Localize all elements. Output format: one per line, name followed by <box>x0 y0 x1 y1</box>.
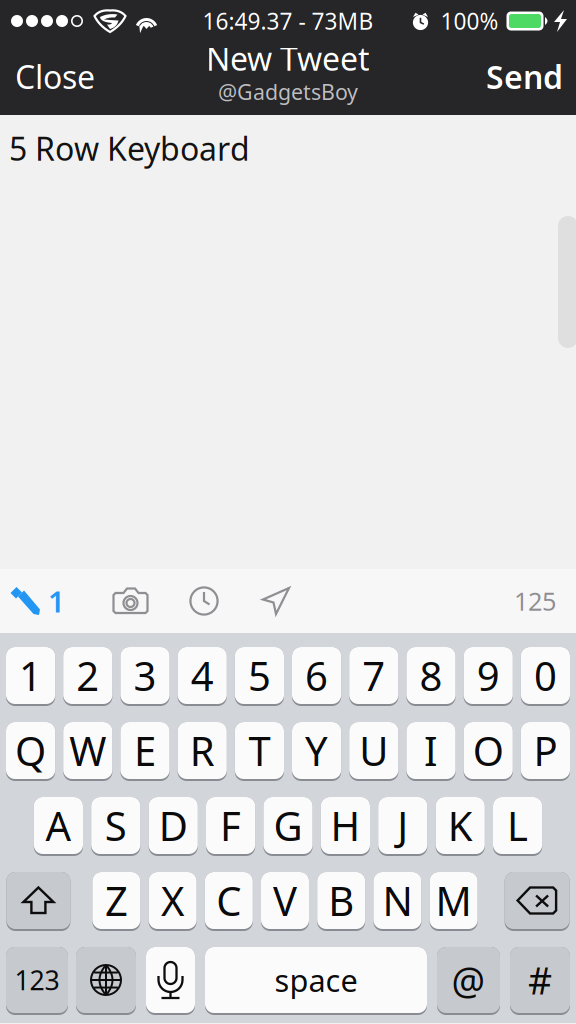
staticText: 125 <box>514 584 556 618</box>
button[interactable]: C <box>205 872 253 931</box>
button[interactable]: Delete <box>505 872 570 931</box>
button[interactable]: Dictate <box>146 947 195 1015</box>
staticText: M <box>436 874 472 927</box>
button[interactable]: O <box>464 722 513 781</box>
staticText: X <box>161 874 184 927</box>
button[interactable]: Location <box>240 569 312 633</box>
staticText: G <box>273 799 302 852</box>
button[interactable]: V <box>261 872 309 931</box>
button[interactable]: Draft <box>0 569 76 633</box>
button[interactable]: Shift <box>6 872 70 931</box>
button[interactable]: J <box>378 797 427 856</box>
button[interactable]: U <box>349 722 398 781</box>
staticText: F <box>220 799 241 852</box>
button[interactable]: R <box>178 722 227 781</box>
staticText: 100% <box>440 6 498 36</box>
staticText: U <box>359 724 388 777</box>
button[interactable]: @ <box>437 947 500 1015</box>
button[interactable]: 4 <box>178 647 227 706</box>
button[interactable]: 3 <box>120 647 170 706</box>
staticText: V <box>273 874 297 927</box>
staticText: 4 <box>191 649 214 702</box>
button[interactable]: A <box>34 797 83 856</box>
button[interactable]: L <box>493 797 542 856</box>
button[interactable]: H <box>321 797 370 856</box>
staticText: E <box>134 724 156 777</box>
staticText: W <box>69 724 106 777</box>
staticText: D <box>159 799 188 852</box>
button[interactable]: space <box>205 947 427 1015</box>
staticText: @ <box>451 955 485 1005</box>
button[interactable]: 5 <box>235 647 284 706</box>
staticText: 8 <box>419 649 442 702</box>
button[interactable]: N <box>373 872 421 931</box>
button[interactable]: 8 <box>406 647 456 706</box>
staticText: New Tweet <box>206 37 370 80</box>
staticText: L <box>507 799 528 852</box>
staticText: 0 <box>534 649 557 702</box>
staticText: H <box>330 799 360 852</box>
staticText: 1 <box>19 649 42 702</box>
staticText: K <box>448 799 473 852</box>
staticText: O <box>473 724 504 777</box>
staticText: 16:49.37 - 73MB <box>202 6 373 36</box>
staticText: C <box>216 874 241 927</box>
staticText: T <box>248 724 270 777</box>
staticText: A <box>45 799 71 852</box>
button[interactable]: 1 <box>6 647 55 706</box>
button[interactable]: 7 <box>349 647 398 706</box>
button[interactable]: Next keyboard <box>76 947 136 1015</box>
button[interactable]: Schedule <box>168 569 240 633</box>
staticText: 9 <box>477 649 500 702</box>
staticText: 5 <box>248 649 271 702</box>
staticText: @GadgetsBoy <box>218 78 358 106</box>
staticText: 7 <box>362 649 385 702</box>
staticText: J <box>397 799 408 852</box>
staticText: S <box>105 799 127 852</box>
staticText: # <box>528 955 552 1005</box>
button[interactable]: Z <box>92 872 140 931</box>
button[interactable]: 0 <box>521 647 570 706</box>
staticText: 1 <box>48 581 65 620</box>
button[interactable]: 6 <box>292 647 341 706</box>
staticText: 5 Row Keyboard <box>9 127 250 169</box>
button[interactable]: E <box>120 722 170 781</box>
button[interactable]: M <box>430 872 478 931</box>
button[interactable]: D <box>149 797 198 856</box>
staticText: 2 <box>76 649 99 702</box>
staticText: Y <box>305 724 328 777</box>
button[interactable]: 9 <box>464 647 513 706</box>
button[interactable]: K <box>436 797 485 856</box>
staticText: Close <box>15 55 95 98</box>
button[interactable]: Send <box>453 42 576 115</box>
button[interactable]: P <box>521 722 570 781</box>
button[interactable]: 2 <box>63 647 112 706</box>
button[interactable]: S <box>91 797 140 856</box>
staticText: P <box>533 724 557 777</box>
staticText: I <box>424 724 438 777</box>
button[interactable]: Close <box>0 42 135 115</box>
staticText: Send <box>486 55 563 98</box>
staticText: space <box>274 960 357 1000</box>
button[interactable]: # <box>510 947 570 1015</box>
staticText: 3 <box>133 649 156 702</box>
staticText: 6 <box>305 649 328 702</box>
button[interactable]: G <box>263 797 313 856</box>
staticText: N <box>382 874 412 927</box>
button[interactable]: B <box>317 872 365 931</box>
button[interactable]: I <box>406 722 456 781</box>
button[interactable]: X <box>149 872 197 931</box>
staticText: B <box>328 874 354 927</box>
button[interactable]: W <box>63 722 112 781</box>
button[interactable]: Q <box>6 722 55 781</box>
staticText: Z <box>105 874 128 927</box>
button[interactable]: 123 <box>6 947 68 1015</box>
button[interactable]: T <box>235 722 284 781</box>
button[interactable]: Camera <box>76 569 168 633</box>
staticText: 123 <box>14 962 59 998</box>
staticText: Q <box>15 724 46 777</box>
button[interactable]: F <box>206 797 255 856</box>
staticText: R <box>190 724 215 777</box>
button[interactable]: Y <box>292 722 341 781</box>
